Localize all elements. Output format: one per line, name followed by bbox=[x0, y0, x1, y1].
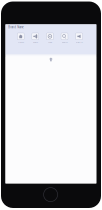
button[interactable]: Sign In bbox=[72, 33, 86, 44]
staticText: Home bbox=[18, 41, 24, 44]
button[interactable]: Share bbox=[28, 33, 43, 44]
button[interactable]: Search bbox=[57, 33, 72, 44]
staticText: Brand Name bbox=[8, 25, 24, 29]
staticText: Sign In bbox=[76, 41, 83, 44]
staticText: Search bbox=[61, 41, 67, 44]
button[interactable]: Scroll to top bbox=[48, 56, 54, 62]
button[interactable]: Look bbox=[43, 33, 57, 44]
button[interactable]: Home bbox=[13, 33, 28, 44]
staticText: Look bbox=[48, 41, 52, 44]
staticText: Share bbox=[33, 41, 38, 44]
